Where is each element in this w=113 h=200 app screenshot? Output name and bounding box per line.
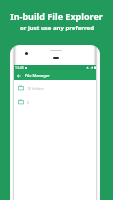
button[interactable]: Back (14, 71, 23, 80)
button[interactable]: 0 (14, 95, 96, 109)
staticText: 13:40 (15, 65, 24, 70)
button[interactable]: 10 folders (14, 81, 96, 95)
staticText: In-build File Explorer (10, 10, 103, 22)
staticText: 0 (27, 100, 30, 105)
staticText: File Manager (25, 73, 50, 78)
staticText: 10 folders (27, 86, 44, 91)
staticText: or just use any preferred (20, 24, 94, 32)
